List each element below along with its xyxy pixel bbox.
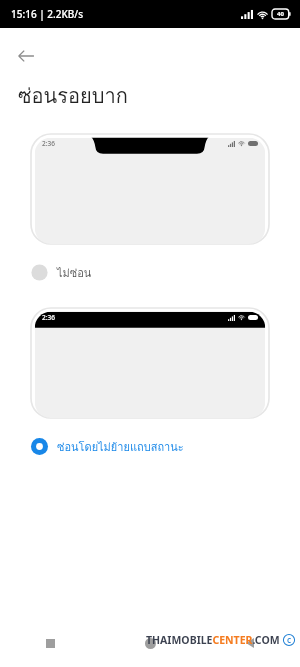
button[interactable]: 2:36 — [31, 134, 269, 244]
staticText: C — [287, 636, 292, 645]
staticText: 40 — [277, 10, 284, 18]
staticText: 2:36 — [42, 139, 55, 148]
button[interactable]: Home — [100, 619, 200, 667]
staticText: ไม่ซ่อน — [57, 264, 92, 281]
staticText: 15:16 | 2.2KB/s — [11, 7, 84, 21]
staticText: ซ่อนโดยไม่ย้ายแถบสถานะ — [57, 438, 184, 455]
button[interactable]: Back — [200, 619, 300, 667]
staticText: THAIMOBILECENTER.COM — [146, 633, 280, 647]
staticText: ซ่อนรอยบาก — [18, 80, 128, 112]
button[interactable]: Back — [6, 36, 46, 76]
button[interactable]: ไม่ซ่อน — [31, 256, 269, 288]
button[interactable]: ซ่อนโดยไม่ย้ายแถบสถานะ — [31, 430, 269, 462]
button[interactable]: 2:36 — [31, 308, 269, 418]
button[interactable]: Recent apps — [0, 619, 100, 667]
staticText: 2:36 — [42, 313, 55, 322]
